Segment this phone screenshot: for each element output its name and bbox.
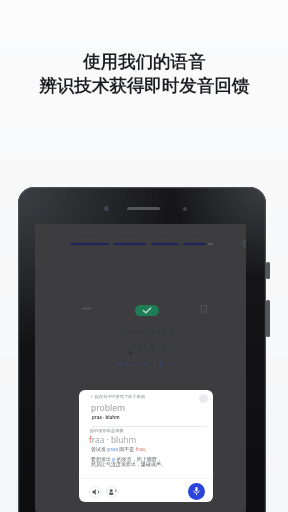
button[interactable] bbox=[89, 486, 101, 498]
staticText: 辨识技术获得即时发音回馈 bbox=[0, 75, 288, 97]
staticText: 使用我们的语音 bbox=[0, 51, 288, 73]
staticText: praa · bluhm bbox=[92, 414, 120, 420]
staticText: problem bbox=[91, 402, 125, 414]
button[interactable]: Example bbox=[126, 360, 149, 367]
staticText: 曾试发 praa 因不是 fraa。 bbox=[91, 446, 150, 453]
staticText: 要想发出 p 的发音，闭上嘴唇， bbox=[91, 456, 162, 463]
button[interactable] bbox=[199, 394, 208, 403]
staticText: ✓ 你在句子中拼写了这个单词 bbox=[90, 394, 145, 400]
button[interactable]: You bbox=[166, 360, 176, 367]
button[interactable] bbox=[106, 486, 118, 498]
button[interactable] bbox=[135, 305, 159, 316]
staticText: 然后让气流迸发而出，爆破成声。 bbox=[91, 461, 166, 467]
staticText: There was a bbox=[120, 325, 174, 338]
staticText: fraa · bluhm bbox=[89, 434, 137, 445]
button[interactable] bbox=[118, 361, 124, 367]
button[interactable] bbox=[188, 483, 205, 500]
staticText: 你的发音听起来像 bbox=[90, 428, 124, 433]
staticText: problem bbox=[128, 340, 166, 353]
button[interactable] bbox=[158, 361, 164, 367]
